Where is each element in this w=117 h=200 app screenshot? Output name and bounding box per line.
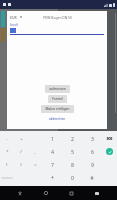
staticText: # xyxy=(90,174,94,181)
button[interactable]: = xyxy=(28,158,42,171)
staticText: - xyxy=(6,136,8,142)
staticText: = xyxy=(34,162,37,168)
button[interactable]: Enter xyxy=(102,145,117,158)
button[interactable]: Makro einfügen xyxy=(41,105,74,113)
staticText: 9 xyxy=(91,161,94,168)
staticText: * xyxy=(51,174,54,181)
button[interactable]: abbrechen xyxy=(47,116,68,122)
button[interactable]: 0 xyxy=(62,171,82,184)
staticText: Anzahl xyxy=(10,23,19,27)
button[interactable]: Hide keyboard xyxy=(15,188,25,198)
staticText: PKW-Bogen DN 50 xyxy=(43,15,72,19)
staticText: aufmessen xyxy=(49,87,66,91)
button[interactable]: 4 xyxy=(42,145,62,158)
staticText: 7 xyxy=(51,161,54,168)
staticText: Formel xyxy=(52,97,63,101)
staticText: Makro einfügen xyxy=(45,107,70,111)
button[interactable]: 9 xyxy=(82,158,102,171)
button[interactable]: * xyxy=(0,145,14,158)
button[interactable]: 1 xyxy=(42,132,62,145)
button[interactable]: Konto xyxy=(10,15,22,20)
staticText: ▼ xyxy=(20,16,22,19)
button[interactable]: 7 xyxy=(42,158,62,171)
button[interactable]: * xyxy=(42,171,62,184)
staticText: 4 xyxy=(51,148,54,155)
staticText: 0 xyxy=(71,174,74,181)
button[interactable]: aufmessen xyxy=(45,85,70,93)
button[interactable]: Home xyxy=(41,188,51,198)
button[interactable]: 2 xyxy=(62,132,82,145)
staticText: * xyxy=(6,149,9,155)
staticText: ( xyxy=(6,162,8,168)
staticText: 1 xyxy=(51,135,54,142)
button[interactable]: Space xyxy=(0,171,14,184)
button[interactable]: Formel xyxy=(48,95,67,103)
staticText: 6 xyxy=(91,148,94,155)
button[interactable]: 8 xyxy=(62,158,82,171)
button[interactable]: 3 xyxy=(82,132,102,145)
button[interactable]: Keyboard switcher xyxy=(92,188,102,198)
staticText: 2 xyxy=(71,135,74,142)
button[interactable]: + xyxy=(14,132,28,145)
staticText: / xyxy=(20,149,22,155)
button[interactable]: Backspace xyxy=(102,132,117,145)
button[interactable]: / xyxy=(14,145,28,158)
button[interactable]: # xyxy=(82,171,102,184)
staticText: 8 xyxy=(71,161,74,168)
staticText: 3 xyxy=(91,135,94,142)
staticText: + xyxy=(20,136,23,142)
staticText: EUR xyxy=(10,15,17,20)
staticText: 5 xyxy=(71,148,74,155)
button[interactable]: 6 xyxy=(82,145,102,158)
button[interactable]: ( xyxy=(0,158,14,171)
button[interactable]: ) xyxy=(14,158,28,171)
staticText: abbrechen xyxy=(49,117,66,121)
button[interactable]: 5 xyxy=(62,145,82,158)
button[interactable]: Recents xyxy=(66,188,76,198)
staticText: ) xyxy=(20,162,22,168)
staticText: , xyxy=(34,149,36,155)
